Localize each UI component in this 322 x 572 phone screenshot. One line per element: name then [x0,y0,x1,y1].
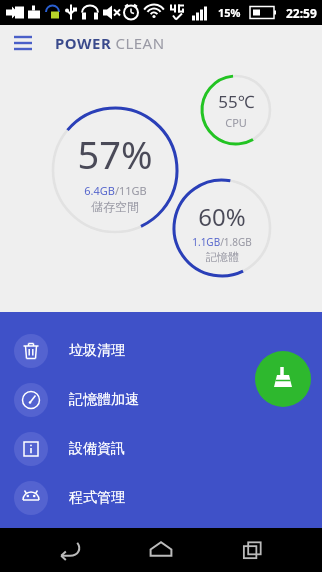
staticText: 55℃ [218,90,255,113]
staticText: 57% [77,128,153,180]
staticText: 記憶體加速 [69,391,139,409]
staticText: 儲存空間 [91,199,139,214]
staticText: 6.4GB/11GB [84,183,147,198]
staticText: 設備資訊 [69,440,125,458]
staticText: 垃圾清理 [69,342,125,360]
button[interactable]: Recents [231,528,275,572]
button[interactable]: 垃圾清理 [0,326,322,375]
button[interactable]: 記憶體加速 [0,375,322,424]
button[interactable]: Back [48,528,92,572]
staticText: CPU [225,115,247,130]
button[interactable]: Menu [8,28,38,58]
staticText: 程式管理 [69,489,125,507]
button[interactable]: 設備資訊 [0,424,322,473]
button[interactable]: Home [139,528,183,572]
staticText: 記憶體 [206,250,239,264]
staticText: 22:59 [286,5,317,21]
staticText: 60% [198,200,246,233]
staticText: POWER CLEAN [55,33,165,53]
staticText: 1.1GB/1.8GB [192,235,252,249]
button[interactable]: 程式管理 [0,473,322,522]
staticText: 15% [218,5,241,20]
button[interactable]: Clean [255,351,311,407]
